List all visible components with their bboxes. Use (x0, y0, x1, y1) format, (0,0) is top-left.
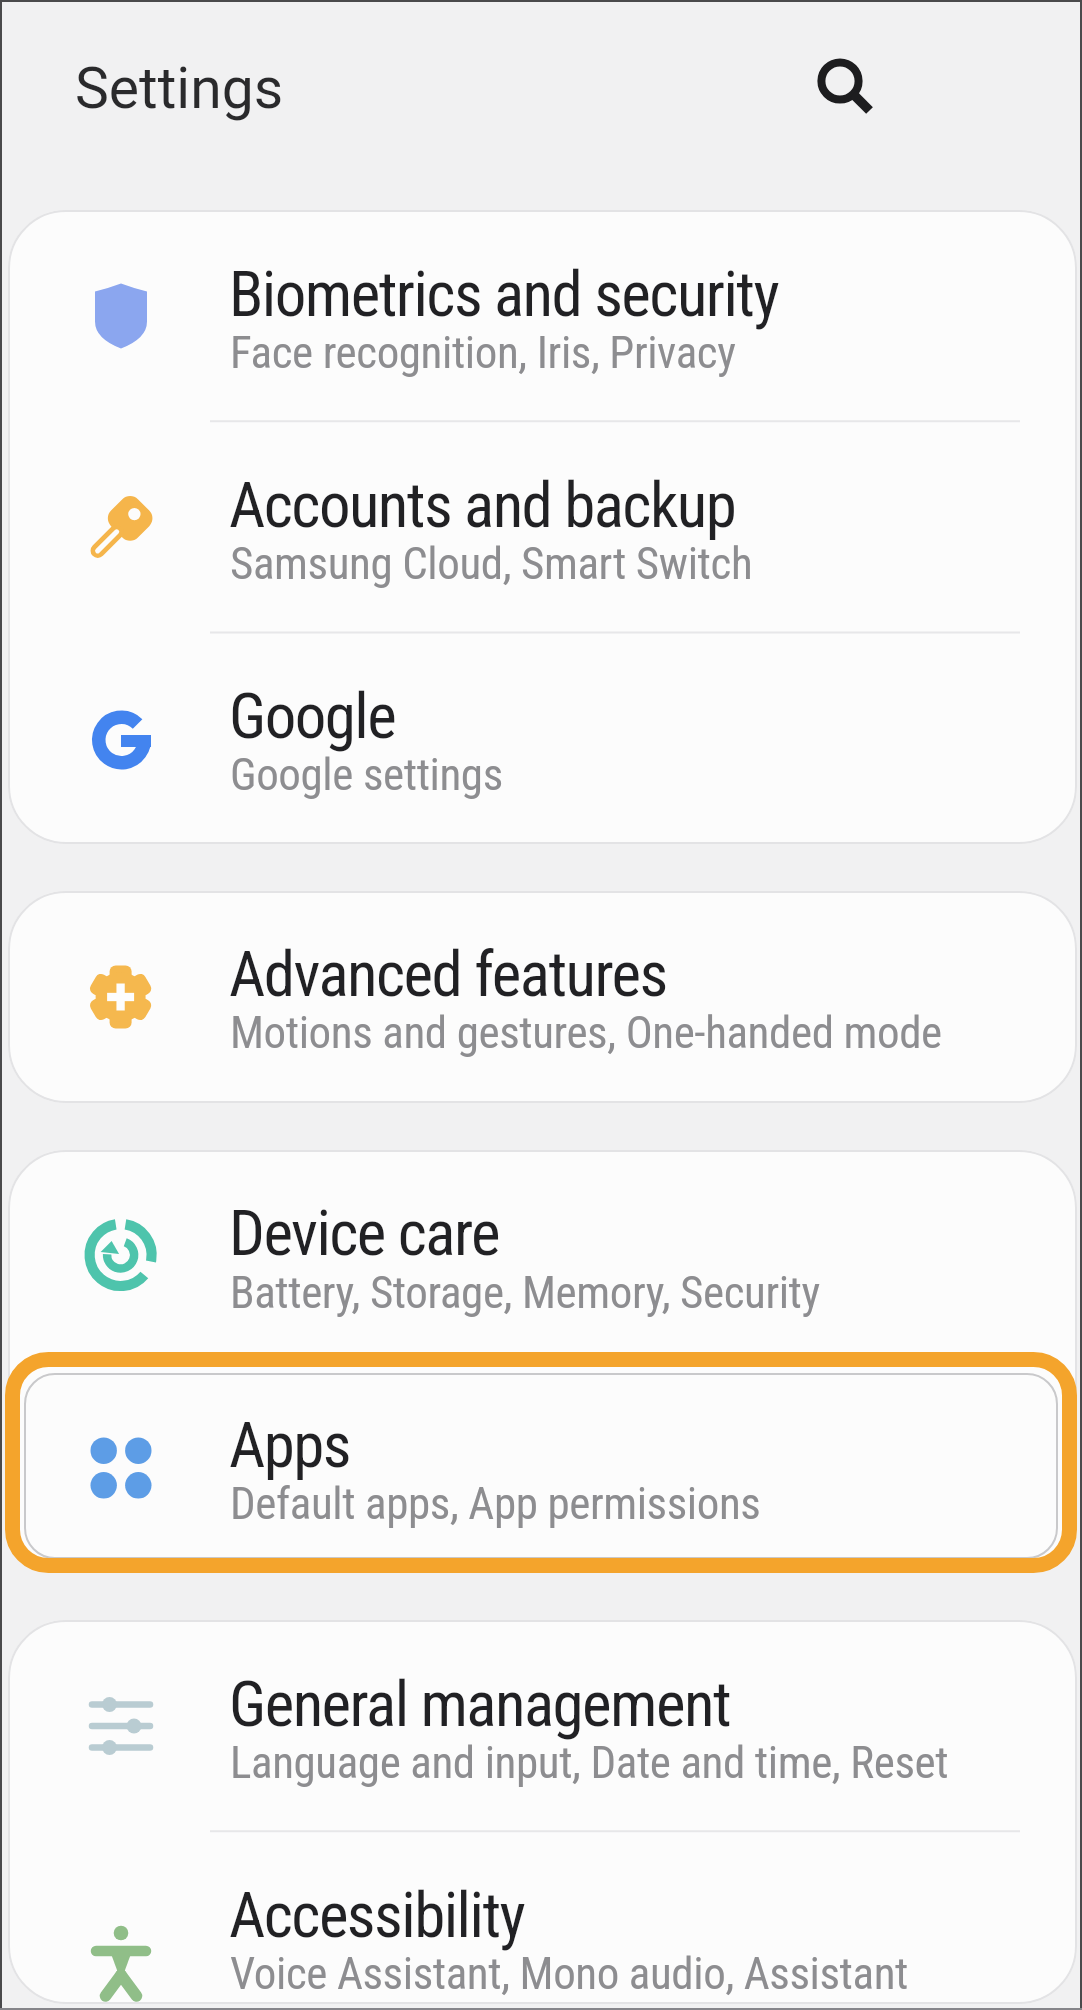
staticText: Face recognition, Iris, Privacy (230, 326, 736, 379)
staticText: Samsung Cloud, Smart Switch (230, 537, 753, 590)
button[interactable] (8, 891, 1077, 1103)
staticText: Default apps, App permissions (230, 1477, 761, 1530)
button[interactable] (8, 1150, 1077, 1361)
button[interactable] (8, 1620, 1077, 1831)
button[interactable] (805, 46, 875, 116)
staticText: General management (229, 1668, 730, 1742)
staticText: Settings (75, 55, 284, 122)
staticText: Advanced features (229, 938, 667, 1012)
staticText: Google settings (230, 748, 503, 801)
button[interactable] (8, 1831, 1077, 2004)
button[interactable] (8, 421, 1077, 632)
staticText: Language and input, Date and time, Reset (230, 1736, 949, 1789)
button[interactable] (8, 633, 1077, 844)
button[interactable] (8, 210, 1077, 421)
button[interactable] (8, 1361, 1077, 1572)
staticText: Voice Assistant, Mono audio, Assistant (230, 1947, 908, 2000)
staticText: Google (229, 680, 396, 754)
staticText: Battery, Storage, Memory, Security (230, 1266, 820, 1319)
staticText: Motions and gestures, One-handed mode (230, 1006, 942, 1059)
staticText: Accounts and backup (229, 469, 736, 543)
staticText: Biometrics and security (229, 258, 779, 332)
staticText: Apps (229, 1409, 350, 1483)
staticText: Accessibility (229, 1879, 525, 1953)
staticText: Device care (229, 1197, 499, 1271)
